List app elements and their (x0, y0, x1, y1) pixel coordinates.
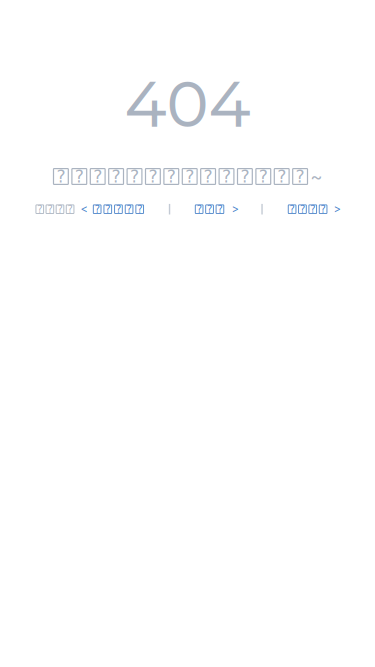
staticText: ? (57, 203, 62, 215)
staticText: ? (300, 203, 305, 215)
staticText: > (231, 202, 238, 216)
staticText: ? (222, 166, 231, 187)
staticText: ? (37, 203, 42, 215)
button[interactable]: ? (287, 204, 340, 215)
staticText: ? (95, 203, 100, 215)
staticText: 404 (124, 65, 250, 143)
button[interactable]: < (80, 204, 145, 215)
staticText: ? (148, 166, 157, 187)
staticText: > (333, 202, 340, 216)
staticText: ? (290, 203, 295, 215)
staticText: ? (68, 203, 73, 215)
staticText: ? (204, 166, 213, 187)
staticText: ? (240, 166, 249, 187)
staticText: ? (93, 166, 102, 187)
staticText: ? (321, 203, 326, 215)
staticText: ? (112, 166, 121, 187)
staticText: < (80, 202, 87, 216)
staticText: ? (217, 203, 222, 215)
staticText: ? (105, 203, 110, 215)
staticText: ? (116, 203, 121, 215)
staticText: ? (56, 166, 65, 187)
staticText: ~ (310, 165, 322, 188)
staticText: ? (167, 166, 176, 187)
staticText: ? (130, 166, 139, 187)
staticText: ? (277, 166, 286, 187)
staticText: ? (296, 166, 305, 187)
staticText: ? (75, 166, 84, 187)
staticText: ? (47, 203, 52, 215)
staticText: ? (127, 203, 132, 215)
button[interactable]: ? (194, 204, 239, 215)
staticText: ? (137, 203, 142, 215)
staticText: ? (207, 203, 212, 215)
staticText: ? (259, 166, 268, 187)
staticText: ? (310, 203, 315, 215)
staticText: ? (197, 203, 202, 215)
staticText: ? (185, 166, 194, 187)
